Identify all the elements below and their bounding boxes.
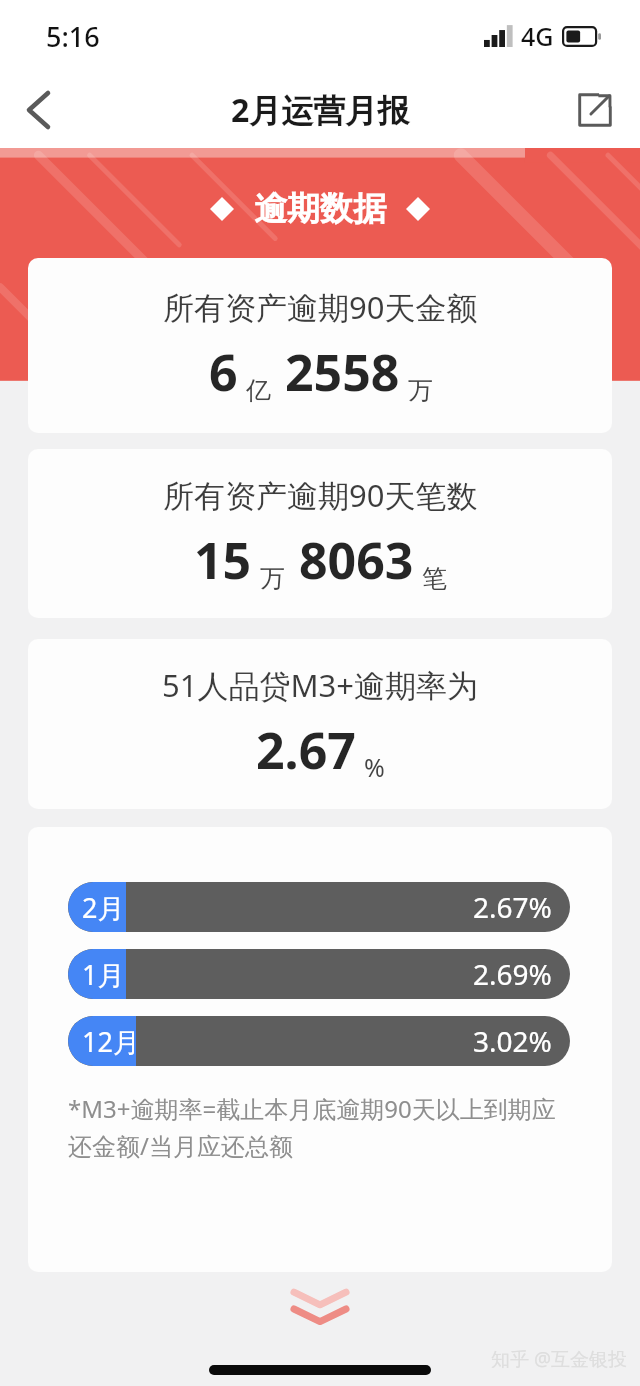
button[interactable]: 12月 — [68, 1016, 570, 1066]
button[interactable]: 1月 — [68, 949, 570, 999]
button[interactable]: Share — [566, 81, 624, 139]
staticText: 万 — [408, 375, 433, 406]
staticText: 2.67% — [473, 888, 552, 926]
button[interactable]: 所有资产逾期90天金额 — [28, 258, 612, 433]
button[interactable]: 所有资产逾期90天笔数 — [28, 449, 612, 618]
staticText: 所有资产逾期90天金额 — [163, 286, 478, 328]
button[interactable]: 51人品贷M3+逾期率为 — [28, 639, 612, 809]
staticText: 4G — [521, 19, 554, 53]
button[interactable]: Scroll down — [285, 1286, 355, 1332]
staticText: 12月 — [82, 1023, 140, 1060]
staticText: 8063 — [299, 526, 414, 594]
staticText: 51人品贷M3+逾期率为 — [162, 664, 479, 706]
staticText: 万 — [260, 563, 285, 594]
staticText: 3.02% — [473, 1022, 552, 1060]
staticText: 2.69% — [473, 955, 552, 993]
staticText: 5:16 — [46, 18, 100, 55]
staticText: 亿 — [246, 375, 271, 406]
staticText: 15 — [194, 526, 252, 594]
staticText: 笔 — [422, 563, 447, 594]
staticText: 2.67 — [256, 716, 356, 784]
staticText: *M3+逾期率=截止本月底逾期90天以上到期应还金额/当月应还总额 — [68, 1092, 570, 1162]
staticText: 2558 — [285, 338, 400, 406]
staticText: 2月运营月报 — [231, 88, 410, 132]
staticText: 所有资产逾期90天笔数 — [163, 474, 478, 516]
staticText: 2月 — [82, 889, 125, 926]
staticText: 6 — [209, 338, 238, 406]
button[interactable]: Back — [0, 72, 76, 148]
staticText: 1月 — [82, 956, 125, 993]
staticText: % — [364, 750, 385, 784]
staticText: 逾期数据 — [254, 188, 386, 230]
staticText: 知乎 @互金银投 — [491, 1346, 628, 1372]
button[interactable]: 2月 — [68, 882, 570, 932]
